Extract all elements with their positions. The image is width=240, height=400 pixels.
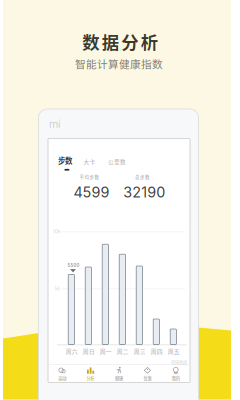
staticText: 我的 — [172, 375, 180, 381]
staticText: 平均步数 — [79, 173, 99, 180]
staticText: 公里数 — [108, 157, 126, 165]
staticText: 健康数据 — [171, 359, 187, 365]
staticText: 数据分析 — [82, 29, 158, 54]
staticText: 健康 — [115, 375, 123, 381]
button[interactable]: 我的 — [162, 365, 190, 383]
button[interactable]: 健康 — [105, 365, 133, 383]
button[interactable]: 运动 — [48, 365, 76, 383]
button[interactable]: 公里数 — [108, 156, 126, 166]
staticText: 步数 — [58, 155, 72, 166]
staticText: 总步数 — [135, 173, 150, 180]
staticText: 大卡 — [83, 157, 95, 165]
staticText: 32190 — [123, 183, 165, 201]
staticText: 10k — [53, 229, 60, 234]
button[interactable]: 步数 — [53, 153, 77, 167]
staticText: 周三 — [134, 347, 146, 355]
staticText: 周五 — [168, 347, 180, 355]
staticText: 优惠 — [143, 375, 151, 381]
staticText: 周一 — [100, 347, 112, 355]
staticText: 5k — [54, 286, 59, 291]
staticText: 周六 — [66, 347, 78, 355]
button[interactable]: 大卡 — [82, 156, 96, 166]
staticText: 周四 — [151, 347, 163, 355]
staticText: 4599 — [73, 183, 109, 201]
staticText: 周二 — [117, 347, 129, 355]
staticText: 分析 — [87, 375, 95, 381]
staticText: 5500 — [67, 262, 79, 268]
staticText: 智能计算健康指数 — [75, 56, 163, 71]
staticText: 周日 — [83, 347, 95, 355]
staticText: mi — [49, 117, 61, 130]
button[interactable]: 优惠 — [133, 365, 162, 383]
button[interactable]: 分析 — [76, 365, 105, 383]
staticText: 运动 — [58, 375, 66, 381]
